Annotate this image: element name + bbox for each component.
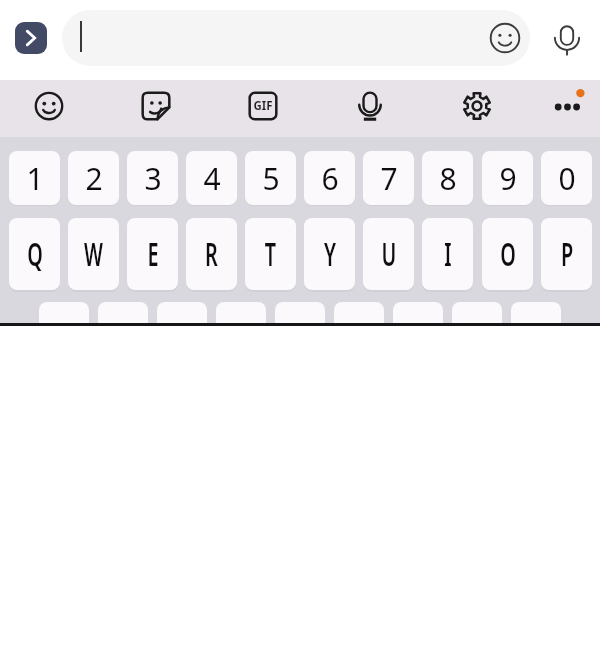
button[interactable]: Key bbox=[452, 302, 502, 324]
staticText: 9 bbox=[499, 158, 517, 199]
button[interactable]: Emoji bbox=[489, 22, 521, 54]
button[interactable]: E bbox=[127, 218, 178, 290]
staticText: I bbox=[444, 232, 452, 276]
button[interactable]: Key bbox=[157, 302, 207, 324]
button[interactable]: Key bbox=[275, 302, 325, 324]
staticText: P bbox=[561, 232, 573, 276]
staticText: E bbox=[147, 232, 159, 276]
button[interactable]: Expand toolbar bbox=[15, 22, 47, 54]
button[interactable]: Settings bbox=[455, 84, 499, 128]
button[interactable]: O bbox=[482, 218, 533, 290]
button[interactable]: Q bbox=[9, 218, 60, 290]
button[interactable]: Stickers bbox=[134, 84, 178, 128]
button[interactable]: 9 bbox=[482, 151, 533, 205]
button[interactable]: 6 bbox=[304, 151, 355, 205]
button[interactable]: 4 bbox=[186, 151, 237, 205]
staticText: T bbox=[265, 232, 276, 276]
staticText: 0 bbox=[558, 158, 576, 199]
button[interactable]: Message input field bbox=[62, 10, 530, 66]
button[interactable]: Voice input bbox=[547, 19, 587, 59]
button[interactable]: 8 bbox=[422, 151, 473, 205]
staticText: Q bbox=[27, 232, 43, 276]
staticText: GIF bbox=[253, 97, 272, 113]
staticText: 2 bbox=[85, 158, 103, 199]
button[interactable]: 2 bbox=[68, 151, 119, 205]
button[interactable]: T bbox=[245, 218, 296, 290]
button[interactable]: More options bbox=[545, 85, 589, 129]
staticText: R bbox=[205, 232, 218, 276]
staticText: U bbox=[382, 232, 396, 276]
button[interactable]: Voice typing bbox=[348, 84, 392, 128]
button[interactable]: U bbox=[363, 218, 414, 290]
button[interactable]: 7 bbox=[363, 151, 414, 205]
button[interactable]: 0 bbox=[541, 151, 592, 205]
staticText: W bbox=[84, 232, 103, 276]
button[interactable]: R bbox=[186, 218, 237, 290]
staticText: O bbox=[500, 232, 516, 276]
button[interactable]: W bbox=[68, 218, 119, 290]
button[interactable]: P bbox=[541, 218, 592, 290]
button[interactable]: Key bbox=[511, 302, 561, 324]
staticText: 4 bbox=[203, 158, 221, 199]
button[interactable]: Key bbox=[393, 302, 443, 324]
button[interactable]: Key bbox=[216, 302, 266, 324]
staticText: 5 bbox=[262, 158, 280, 199]
button[interactable]: I bbox=[422, 218, 473, 290]
button[interactable]: Y bbox=[304, 218, 355, 290]
button[interactable]: 3 bbox=[127, 151, 178, 205]
staticText: 3 bbox=[144, 158, 162, 199]
button[interactable]: Key bbox=[334, 302, 384, 324]
staticText: 1 bbox=[26, 158, 44, 199]
staticText: 7 bbox=[380, 158, 398, 199]
button[interactable]: 5 bbox=[245, 151, 296, 205]
button[interactable]: Key bbox=[39, 302, 89, 324]
button[interactable]: Key bbox=[98, 302, 148, 324]
staticText: 6 bbox=[321, 158, 339, 199]
button[interactable]: 1 bbox=[9, 151, 60, 205]
staticText: Y bbox=[324, 232, 336, 276]
button[interactable]: GIF keyboard bbox=[241, 84, 285, 128]
button[interactable]: Emoji keyboard bbox=[27, 84, 71, 128]
staticText: 8 bbox=[439, 158, 457, 199]
